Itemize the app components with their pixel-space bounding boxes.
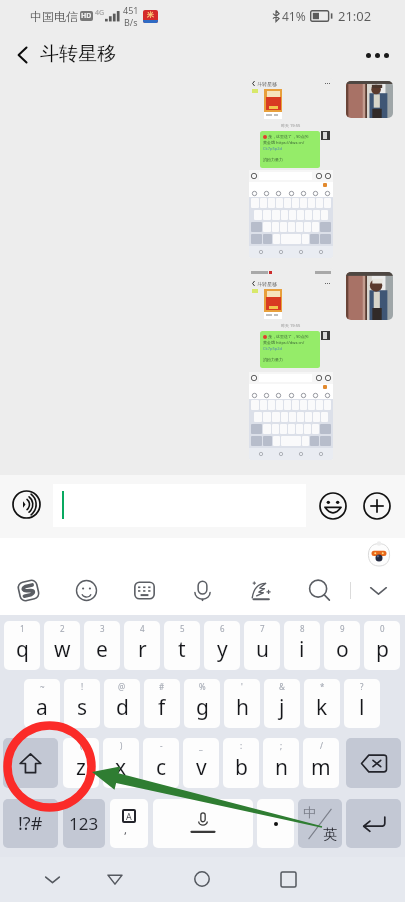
button[interactable]: Keyboard layout: [129, 575, 159, 605]
button[interactable]: _: [183, 738, 219, 788]
button[interactable]: More options: [357, 35, 397, 75]
button[interactable]: &: [264, 679, 300, 728]
staticText: k: [316, 693, 328, 722]
button[interactable]: Voice input: [187, 575, 217, 605]
button[interactable]: ;: [263, 738, 299, 788]
staticText: 消粉力量力: [263, 357, 283, 362]
staticText: 123: [69, 812, 99, 835]
staticText: 6: [220, 623, 225, 634]
staticText: 昨天 19:55: [281, 123, 301, 128]
staticText: %: [199, 681, 206, 692]
staticText: 0: [380, 623, 385, 634]
staticText: h: [236, 693, 249, 722]
button[interactable]: ~: [24, 679, 60, 728]
button[interactable]: Back: [98, 862, 132, 896]
staticText: @: [118, 681, 126, 692]
staticText: 8: [300, 623, 305, 634]
button[interactable]: Hide keyboard: [35, 862, 69, 896]
button[interactable]: @: [104, 679, 140, 728]
button[interactable]: #: [144, 679, 180, 728]
button[interactable]: Handwriting: [245, 575, 275, 605]
staticText: 黄金哦 https://dwz.cn/: [263, 140, 305, 145]
staticText: 41%: [282, 8, 306, 24]
button[interactable]: 9: [324, 621, 360, 670]
button[interactable]: 3: [84, 621, 120, 670]
button[interactable]: Backspace: [346, 738, 401, 788]
button[interactable]: 2: [44, 621, 80, 670]
button[interactable]: ': [224, 679, 260, 728]
button[interactable]: Recent apps: [271, 862, 305, 896]
button[interactable]: 0: [364, 621, 400, 670]
staticText: a: [36, 693, 48, 722]
staticText: x: [115, 753, 127, 782]
button[interactable]: 123: [63, 799, 105, 848]
button[interactable]: -: [143, 738, 179, 788]
staticText: 黄金哦 https://dwz.cn/: [263, 340, 305, 345]
staticText: 1: [20, 623, 25, 634]
button[interactable]: /: [303, 738, 339, 788]
button[interactable]: Collapse toolbar: [363, 575, 393, 605]
staticText: o: [336, 635, 349, 664]
staticText: _: [199, 740, 203, 751]
staticText: y: [217, 635, 228, 664]
staticText: ?: [360, 681, 364, 692]
button[interactable]: Voice input: [12, 490, 41, 519]
staticText: A: [126, 810, 132, 822]
staticText: 7: [260, 623, 265, 634]
button[interactable]: ?: [344, 679, 380, 728]
button[interactable]: (: [63, 738, 99, 788]
staticText: 5: [180, 623, 185, 634]
staticText: ~: [40, 681, 45, 692]
button[interactable]: 7: [244, 621, 280, 670]
button[interactable]: !?#: [3, 799, 58, 848]
button[interactable]: Back: [6, 38, 40, 72]
button[interactable]: Emoji: [71, 575, 101, 605]
button[interactable]: Switch language: [298, 799, 342, 848]
staticText: f: [158, 693, 166, 722]
staticText: 21:02: [338, 7, 372, 25]
staticText: 中国电信: [30, 9, 78, 24]
button[interactable]: Emoji: [319, 492, 347, 520]
staticText: 亲，这里送了，¥0点的: [268, 334, 309, 339]
staticText: u: [256, 635, 269, 664]
button[interactable]: *: [304, 679, 340, 728]
staticText: n: [275, 753, 288, 782]
button[interactable]: %: [184, 679, 220, 728]
button[interactable]: Enter: [346, 799, 401, 848]
staticText: ,: [124, 822, 127, 837]
staticText: ': [241, 681, 243, 692]
button[interactable]: :: [223, 738, 259, 788]
staticText: g: [196, 693, 209, 722]
button[interactable]: Space: [153, 799, 253, 848]
staticText: 4G: [95, 8, 105, 18]
button[interactable]: 5: [164, 621, 200, 670]
staticText: -: [160, 740, 163, 751]
button[interactable]: 6: [204, 621, 240, 670]
staticText: (: [80, 740, 83, 751]
staticText: t: [178, 635, 186, 664]
staticText: i: [299, 635, 305, 664]
button[interactable]: More actions: [363, 492, 391, 520]
button[interactable]: Period: [257, 799, 294, 848]
button[interactable]: Sogou input settings: [13, 575, 43, 605]
staticText: Ck7p5p2d: [263, 146, 282, 151]
button[interactable]: Home: [185, 862, 219, 896]
staticText: 中: [303, 804, 316, 820]
button[interactable]: ): [103, 738, 139, 788]
staticText: ): [120, 740, 123, 751]
button[interactable]: 4: [124, 621, 160, 670]
button[interactable]: Symbols: [110, 799, 148, 848]
button[interactable]: !: [64, 679, 100, 728]
staticText: Ck7p5p2d: [263, 346, 282, 351]
staticText: !: [81, 681, 84, 692]
button[interactable]: Search: [304, 575, 334, 605]
button[interactable]: 8: [284, 621, 320, 670]
staticText: :: [240, 740, 243, 751]
button[interactable]: Shift: [3, 738, 58, 788]
staticText: 亲，这里送了，¥0点的: [268, 134, 309, 139]
staticText: *: [320, 681, 325, 692]
button[interactable]: 1: [4, 621, 40, 670]
staticText: 斗转星移: [257, 81, 277, 87]
staticText: w: [54, 635, 71, 664]
staticText: &: [279, 681, 285, 692]
